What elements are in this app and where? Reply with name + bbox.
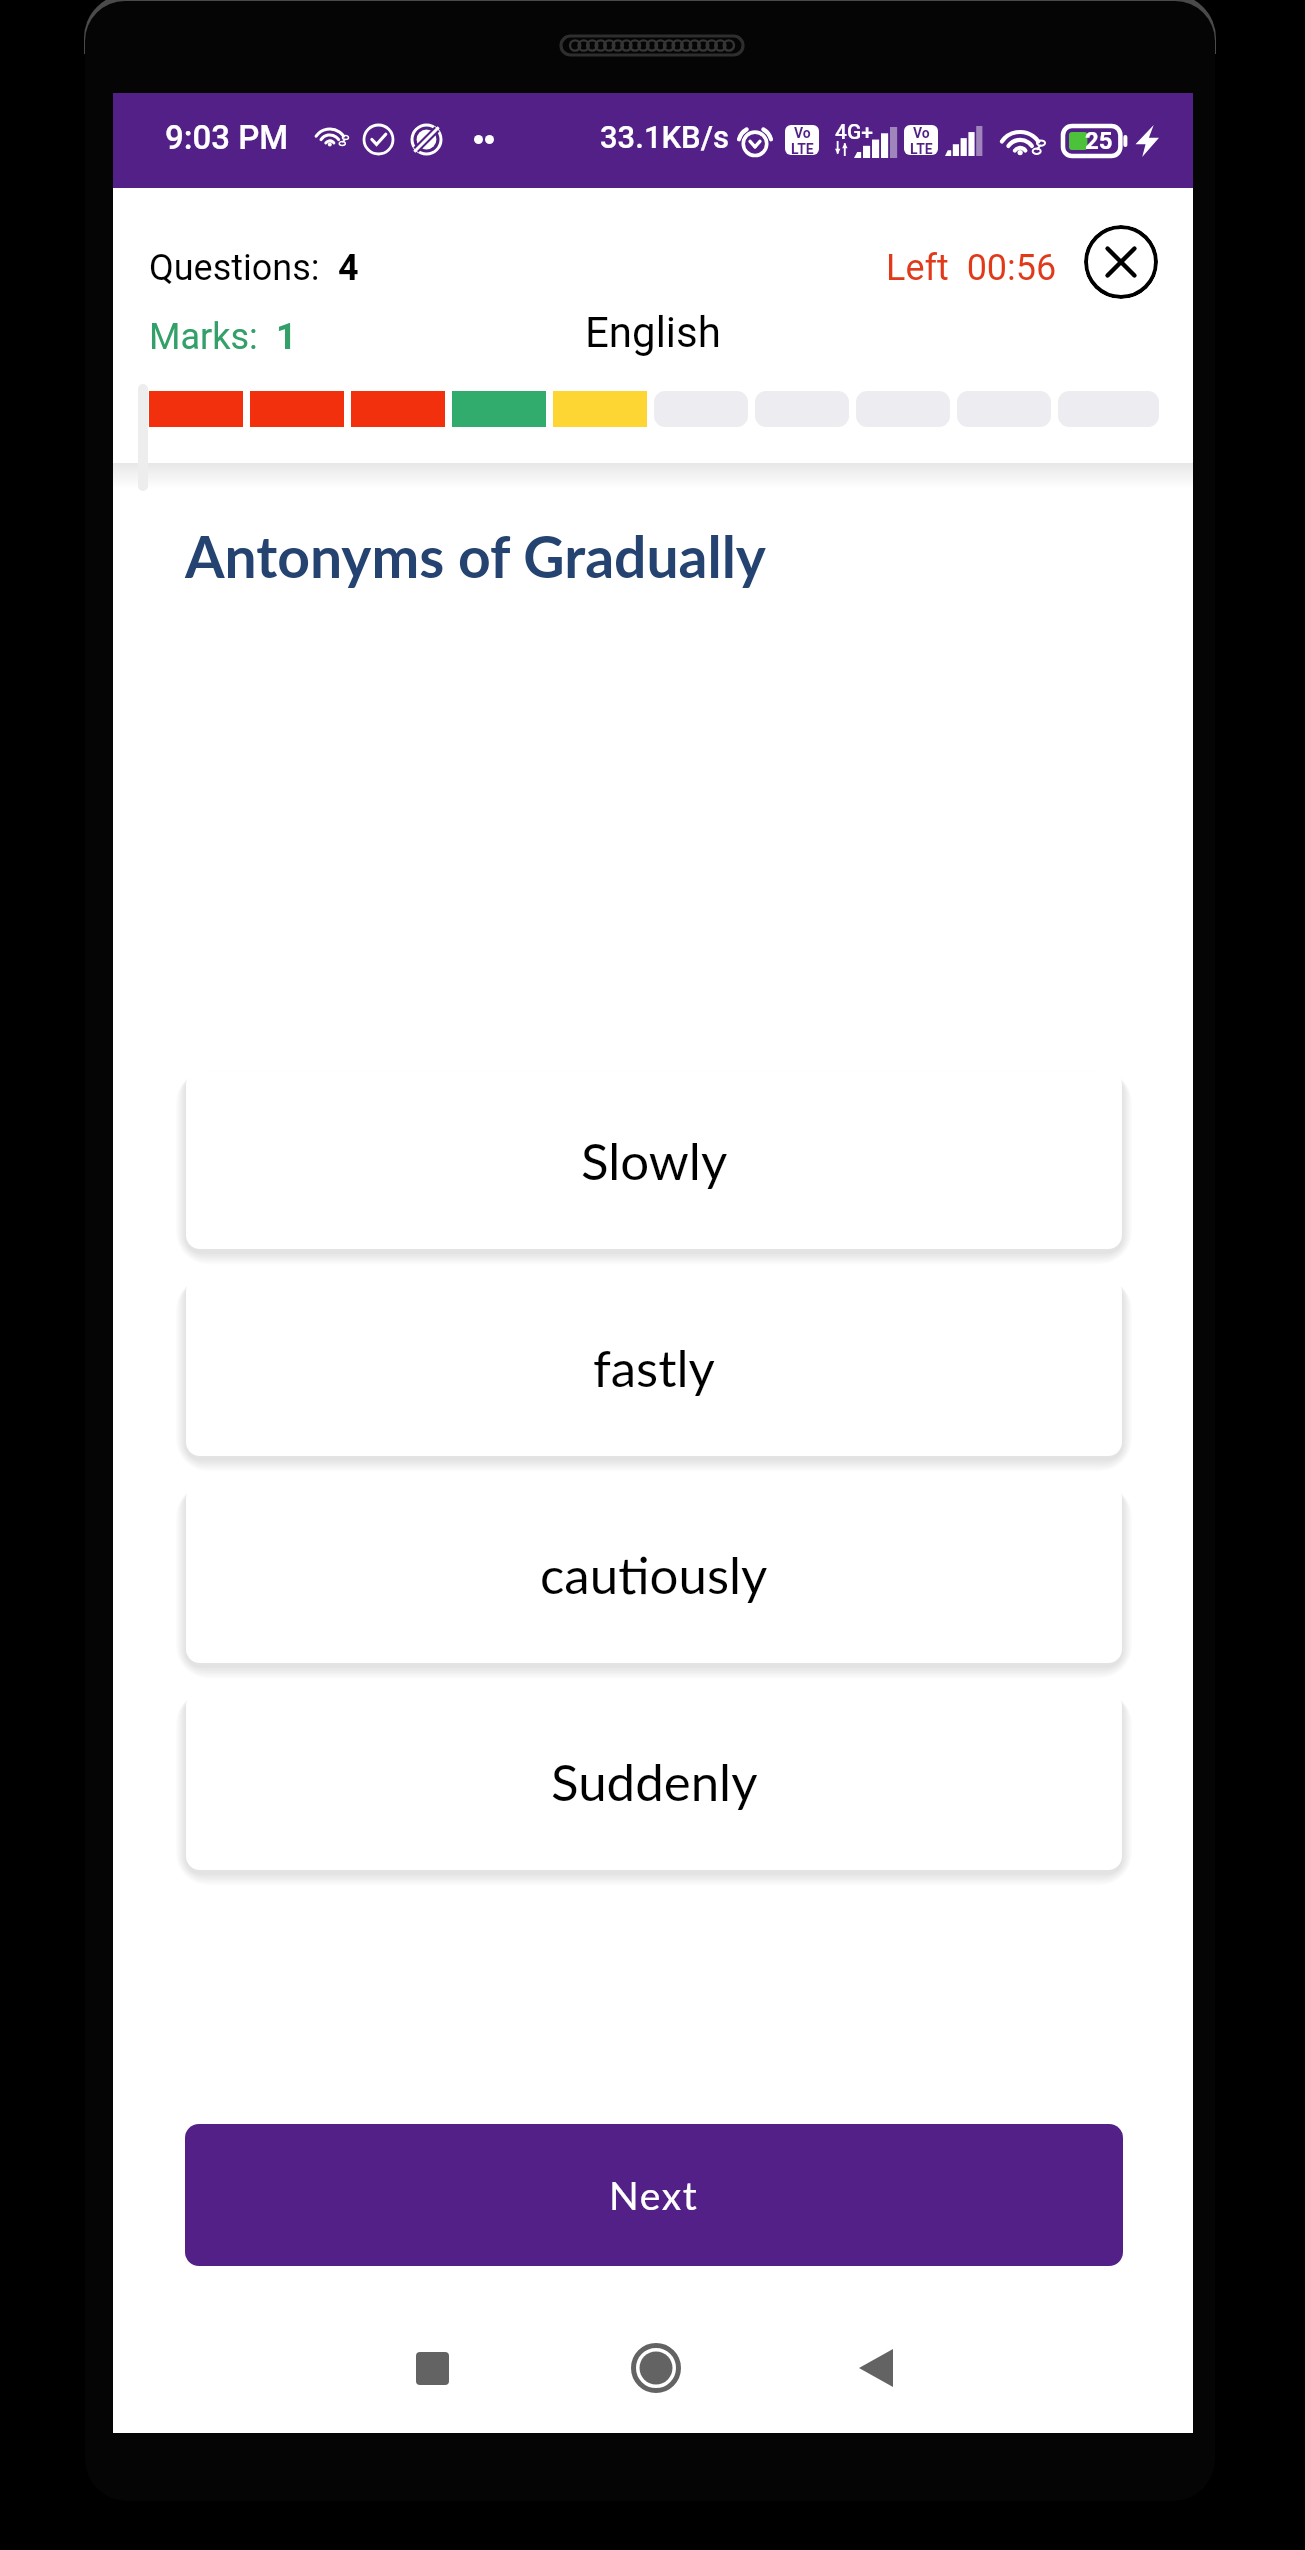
staticText: Next [609, 2172, 699, 2219]
button[interactable]: Recent apps [392, 2328, 472, 2408]
staticText: cautiously [540, 1544, 768, 1605]
staticText: Vo [794, 125, 811, 141]
staticText: Questions: [149, 247, 329, 289]
staticText: fastly [593, 1337, 715, 1398]
staticText: English [585, 308, 721, 357]
staticText: LTE [791, 141, 814, 155]
staticText: 4G+ [835, 120, 873, 145]
staticText: 4 [329, 247, 359, 289]
button[interactable]: Close [1084, 225, 1158, 299]
staticText: 9:03 PM [165, 118, 289, 157]
button[interactable]: fastly [186, 1278, 1122, 1456]
button[interactable]: Back [836, 2328, 916, 2408]
staticText: Vo [913, 125, 930, 141]
staticText: Left 00:56 [886, 247, 1057, 289]
button[interactable]: cautiously [186, 1485, 1122, 1663]
staticText: Marks: [149, 316, 267, 358]
staticText: 25 [1085, 127, 1113, 155]
staticText: 33.1KB/s [600, 119, 729, 155]
staticText: LTE [910, 141, 933, 155]
button[interactable]: Home [616, 2328, 696, 2408]
staticText: Antonyms of Gradually [185, 522, 766, 590]
button[interactable]: Suddenly [186, 1692, 1122, 1870]
button[interactable]: Next [185, 2124, 1123, 2266]
button[interactable]: Slowly [186, 1071, 1122, 1249]
staticText: Suddenly [551, 1751, 758, 1812]
staticText: Slowly [581, 1130, 728, 1191]
staticText: 1 [267, 316, 297, 358]
